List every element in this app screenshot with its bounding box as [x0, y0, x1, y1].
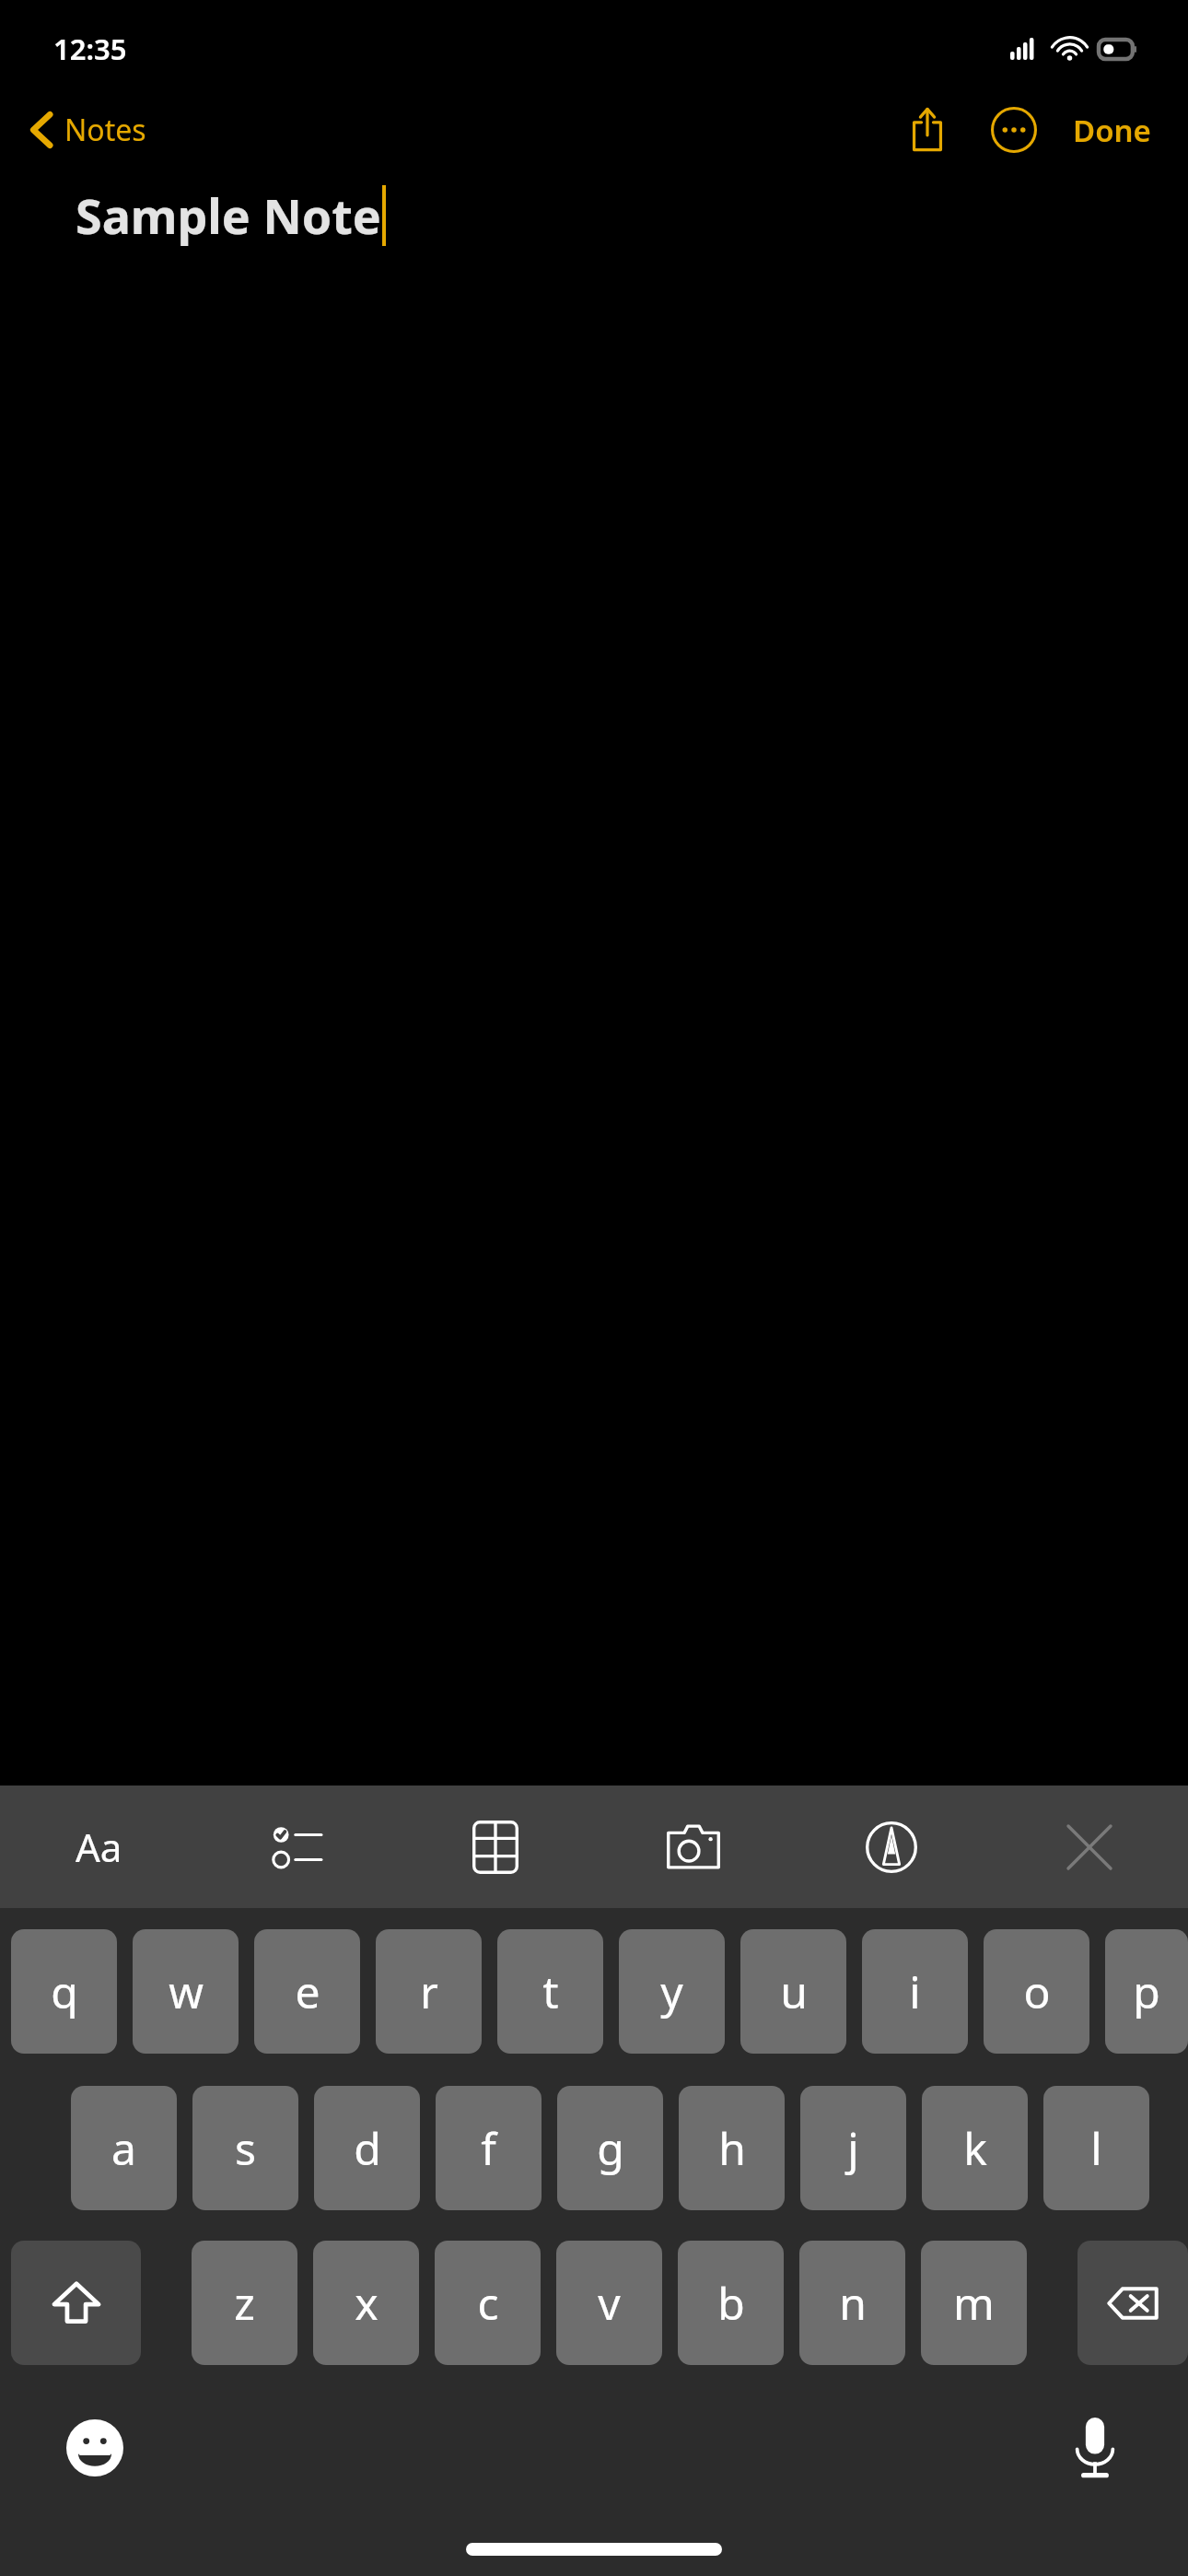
- button[interactable]: g: [557, 2086, 663, 2210]
- button[interactable]: j: [800, 2086, 906, 2210]
- button[interactable]: s: [192, 2086, 298, 2210]
- staticText: Done: [1073, 110, 1151, 151]
- staticText: z: [234, 2273, 255, 2333]
- button[interactable]: More options: [975, 91, 1053, 169]
- button[interactable]: Markup: [792, 1786, 990, 1908]
- button[interactable]: k: [922, 2086, 1028, 2210]
- button[interactable]: q: [11, 1929, 117, 2054]
- button[interactable]: f: [436, 2086, 542, 2210]
- button[interactable]: d: [314, 2086, 420, 2210]
- staticText: r: [420, 1961, 438, 2021]
- button[interactable]: Close keyboard: [990, 1786, 1188, 1908]
- staticText: a: [111, 2118, 136, 2178]
- staticText: g: [597, 2118, 624, 2178]
- staticText: p: [1133, 1961, 1160, 2021]
- button[interactable]: Notes: [0, 100, 163, 159]
- staticText: e: [295, 1961, 320, 2021]
- staticText: i: [909, 1961, 921, 2021]
- staticText: Sample Note: [76, 182, 381, 248]
- staticText: o: [1023, 1961, 1051, 2021]
- staticText: t: [542, 1961, 559, 2021]
- staticText: y: [660, 1961, 683, 2021]
- button[interactable]: e: [254, 1929, 360, 2054]
- button[interactable]: Camera: [594, 1786, 792, 1908]
- button[interactable]: p: [1105, 1929, 1188, 2054]
- staticText: j: [847, 2118, 859, 2178]
- button[interactable]: Dictation: [1055, 2408, 1135, 2488]
- staticText: k: [963, 2118, 987, 2178]
- button[interactable]: n: [799, 2241, 905, 2365]
- staticText: w: [169, 1961, 204, 2021]
- button[interactable]: y: [619, 1929, 725, 2054]
- button[interactable]: z: [192, 2241, 297, 2365]
- button[interactable]: m: [921, 2241, 1027, 2365]
- staticText: x: [355, 2273, 379, 2333]
- staticText: f: [481, 2118, 496, 2178]
- button[interactable]: h: [679, 2086, 785, 2210]
- button[interactable]: u: [740, 1929, 846, 2054]
- button[interactable]: Format: [0, 1786, 198, 1908]
- button[interactable]: o: [984, 1929, 1089, 2054]
- staticText: 12:35: [53, 29, 127, 68]
- button[interactable]: t: [497, 1929, 603, 2054]
- staticText: q: [51, 1961, 78, 2021]
- staticText: d: [354, 2118, 381, 2178]
- button[interactable]: w: [133, 1929, 239, 2054]
- button[interactable]: b: [678, 2241, 784, 2365]
- staticText: c: [477, 2273, 499, 2333]
- button[interactable]: r: [376, 1929, 482, 2054]
- staticText: b: [717, 2273, 745, 2333]
- staticText: u: [780, 1961, 808, 2021]
- staticText: m: [953, 2273, 995, 2333]
- button[interactable]: Backspace: [1077, 2241, 1188, 2365]
- button[interactable]: Sample Note: [76, 182, 1188, 248]
- button[interactable]: Shift: [11, 2241, 141, 2365]
- button[interactable]: Share: [889, 91, 966, 169]
- staticText: h: [718, 2118, 746, 2178]
- button[interactable]: Table: [396, 1786, 594, 1908]
- staticText: Aa: [76, 1821, 122, 1873]
- button[interactable]: Checklist: [198, 1786, 396, 1908]
- staticText: Notes: [64, 110, 146, 150]
- button[interactable]: x: [313, 2241, 419, 2365]
- button[interactable]: v: [556, 2241, 662, 2365]
- button[interactable]: l: [1043, 2086, 1149, 2210]
- button[interactable]: a: [71, 2086, 177, 2210]
- staticText: n: [839, 2273, 867, 2333]
- button[interactable]: Emoji: [55, 2408, 134, 2488]
- staticText: v: [598, 2273, 621, 2333]
- button[interactable]: Done: [1060, 97, 1164, 164]
- button[interactable]: c: [435, 2241, 541, 2365]
- staticText: l: [1090, 2118, 1102, 2178]
- button[interactable]: i: [862, 1929, 968, 2054]
- staticText: s: [235, 2118, 256, 2178]
